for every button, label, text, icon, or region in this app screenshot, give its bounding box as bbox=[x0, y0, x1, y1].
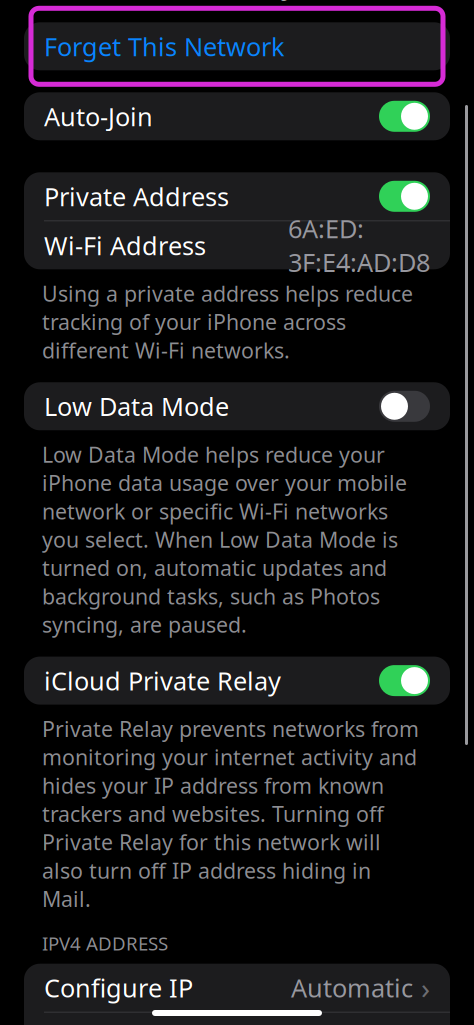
staticText: iCloud Private Relay bbox=[44, 664, 281, 697]
button[interactable]: Low Data Mode bbox=[24, 382, 450, 430]
button[interactable]: Private Address bbox=[24, 172, 450, 220]
staticText: Wi-Fi Address bbox=[44, 228, 206, 262]
staticText: ParthHeemaJio 5G bbox=[117, 0, 356, 2]
button[interactable]: Wi-Fi Address bbox=[24, 221, 450, 269]
button[interactable]: Configure IP bbox=[24, 964, 450, 1012]
button[interactable]: Forget This Network bbox=[24, 22, 450, 70]
staticText: Using a private address helps reduce tra… bbox=[42, 279, 413, 364]
staticText: Automatic bbox=[291, 971, 413, 1004]
staticText: IPV4 ADDRESS bbox=[42, 931, 168, 956]
button[interactable]: IP Address bbox=[24, 1013, 450, 1025]
staticText: Low Data Mode bbox=[44, 389, 229, 423]
staticText: › bbox=[421, 968, 430, 1007]
button[interactable]: iCloud Private Relay bbox=[24, 657, 450, 705]
staticText: Forget This Network bbox=[44, 29, 285, 63]
staticText: 6A:ED:3F:E4:AD:D8 bbox=[288, 212, 430, 279]
button[interactable]: Auto-Join bbox=[24, 92, 450, 140]
staticText: Private Relay prevents networks from mon… bbox=[42, 715, 419, 913]
staticText: Low Data Mode helps reduce your iPhone d… bbox=[42, 440, 407, 639]
staticText: Auto-Join bbox=[44, 99, 153, 133]
staticText: Private Address bbox=[44, 179, 229, 213]
staticText: Configure IP bbox=[44, 971, 193, 1004]
button[interactable]: ‹ bbox=[0, 0, 108, 6]
